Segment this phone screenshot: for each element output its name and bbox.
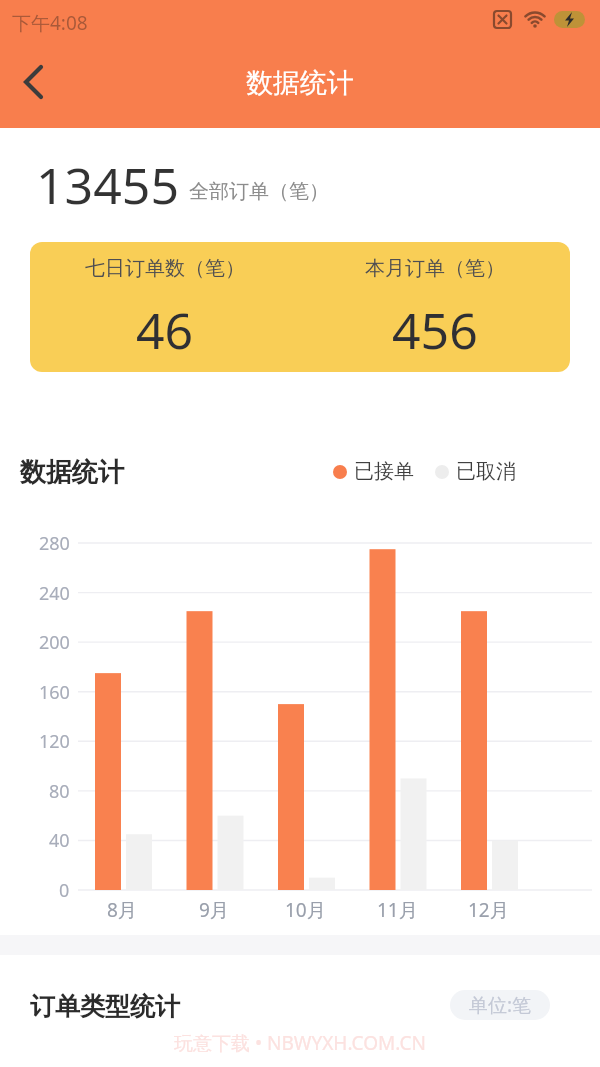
button[interactable]: [10, 58, 58, 106]
staticText: 0: [59, 878, 70, 903]
staticText: 订单类型统计: [30, 991, 180, 1022]
staticText: 200: [39, 630, 70, 655]
staticText: 11月: [377, 897, 418, 923]
staticText: 12月: [468, 897, 509, 923]
staticText: 已取消: [456, 459, 516, 484]
staticText: 数据统计: [20, 456, 124, 489]
staticText: 数据统计: [246, 66, 354, 100]
staticText: 120: [39, 729, 70, 754]
staticText: 80: [49, 779, 70, 804]
staticText: 七日订单数（笔）: [85, 256, 245, 281]
staticText: 本月订单（笔）: [365, 256, 505, 281]
staticText: 8月: [107, 897, 137, 923]
staticText: 160: [39, 680, 70, 705]
staticText: 玩意下载 • NBWYXH.COM.CN: [174, 1030, 426, 1056]
staticText: 40: [49, 828, 70, 853]
button[interactable]: 已取消: [435, 459, 516, 484]
staticText: 46: [136, 296, 194, 364]
button[interactable]: 已接单: [333, 459, 414, 484]
staticText: 10月: [285, 897, 326, 923]
staticText: 456: [392, 296, 478, 364]
staticText: 280: [39, 531, 70, 556]
staticText: 已接单: [354, 459, 414, 484]
staticText: 9月: [199, 897, 229, 923]
staticText: 全部订单（笔）: [189, 179, 329, 204]
staticText: 240: [39, 581, 70, 606]
staticText: 下午4:08: [12, 10, 88, 36]
staticText: 单位:笔: [469, 992, 532, 1018]
staticText: 13455: [36, 151, 179, 219]
